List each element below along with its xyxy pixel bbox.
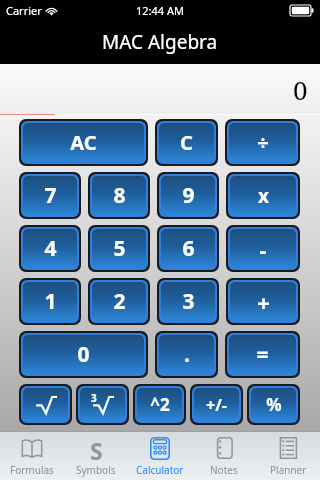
staticText: Symbols bbox=[76, 463, 116, 477]
button[interactable]: S bbox=[64, 432, 128, 480]
staticText: 3 bbox=[182, 287, 195, 316]
staticText: 8 bbox=[113, 181, 126, 210]
staticText: +/- bbox=[206, 394, 227, 416]
staticText: Carrier bbox=[6, 3, 42, 18]
staticText: ÷ bbox=[257, 129, 269, 156]
button[interactable]: 8 bbox=[92, 176, 146, 215]
staticText: 2 bbox=[113, 287, 126, 316]
button[interactable]: 0 bbox=[23, 335, 144, 374]
staticText: Planner bbox=[270, 463, 307, 477]
button[interactable]: 7 bbox=[23, 176, 77, 215]
staticText: AC bbox=[70, 129, 97, 156]
button[interactable]: + bbox=[230, 282, 296, 321]
button[interactable]: . bbox=[159, 335, 214, 374]
staticText: 3 bbox=[91, 391, 97, 405]
staticText: - bbox=[259, 234, 267, 264]
button[interactable]: +/- bbox=[194, 388, 239, 421]
staticText: % bbox=[266, 393, 282, 416]
staticText: C bbox=[180, 129, 193, 156]
button[interactable]: 3 bbox=[80, 388, 125, 421]
staticText: Notes bbox=[210, 463, 238, 477]
button[interactable]: 9 bbox=[161, 176, 215, 215]
button[interactable]: AC bbox=[23, 123, 144, 162]
button[interactable]: 1 bbox=[23, 282, 77, 321]
staticText: 4 bbox=[44, 234, 57, 263]
staticText: ^2 bbox=[150, 393, 170, 416]
staticText: . bbox=[184, 340, 190, 369]
button[interactable]: Notes bbox=[192, 432, 256, 480]
staticText: Formulas bbox=[10, 463, 54, 477]
button[interactable]: 5 bbox=[92, 229, 146, 268]
staticText: 0 bbox=[293, 72, 308, 107]
button[interactable]: ÷ bbox=[229, 123, 296, 162]
staticText: 7 bbox=[44, 181, 57, 210]
button[interactable]: Formulas bbox=[0, 432, 64, 480]
button[interactable]: C bbox=[159, 123, 214, 162]
staticText: = bbox=[256, 340, 269, 369]
staticText: Calculator bbox=[136, 463, 184, 477]
staticText: x bbox=[258, 183, 269, 209]
button[interactable]: Planner bbox=[256, 432, 320, 480]
button[interactable]: 2 bbox=[92, 282, 146, 321]
staticText: 12:44 AM bbox=[136, 3, 184, 18]
button[interactable]: x bbox=[230, 176, 296, 215]
staticText: S bbox=[90, 435, 103, 461]
staticText: + bbox=[257, 287, 270, 317]
button[interactable]: ^2 bbox=[137, 388, 182, 421]
staticText: 1 bbox=[44, 287, 57, 316]
button[interactable]: = bbox=[229, 335, 296, 374]
button[interactable]: - bbox=[230, 229, 296, 268]
staticText: MAC Algebra bbox=[102, 29, 218, 55]
button[interactable]: 6 bbox=[161, 229, 215, 268]
button[interactable]: % bbox=[251, 388, 296, 421]
button[interactable]: Calculator bbox=[128, 432, 192, 480]
staticText: 9 bbox=[182, 181, 195, 210]
button[interactable]: 4 bbox=[23, 229, 77, 268]
staticText: 0 bbox=[77, 340, 90, 369]
button[interactable] bbox=[23, 388, 68, 421]
button[interactable]: 3 bbox=[161, 282, 215, 321]
staticText: 6 bbox=[182, 234, 195, 263]
staticText: 5 bbox=[113, 234, 126, 263]
